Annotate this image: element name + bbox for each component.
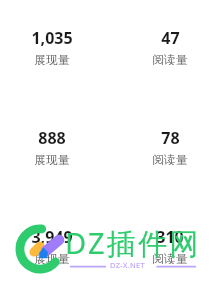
staticText: 展现量 — [34, 252, 70, 264]
staticText: 阅读量 — [152, 252, 188, 264]
button[interactable]: 888 — [7, 127, 97, 165]
button[interactable]: 1,035 — [7, 27, 97, 65]
staticText: 展现量 — [34, 153, 70, 165]
staticText: 阅读量 — [152, 53, 188, 65]
staticText: 阅读量 — [152, 153, 188, 165]
staticText: 47 — [161, 27, 180, 49]
staticText: 78 — [161, 127, 180, 149]
staticText: 3,949 — [31, 226, 73, 248]
button[interactable]: 78 — [125, 127, 215, 165]
staticText: DZ插件网 — [65, 223, 201, 263]
staticText: DZ-X.NET — [110, 260, 145, 270]
staticText: 1,035 — [31, 27, 73, 49]
staticText: 888 — [38, 127, 66, 149]
button[interactable]: 47 — [125, 27, 215, 65]
staticText: 310 — [156, 226, 184, 248]
button[interactable]: 310 — [125, 226, 215, 264]
button[interactable]: 3,949 — [7, 226, 97, 264]
staticText: 展现量 — [34, 53, 70, 65]
